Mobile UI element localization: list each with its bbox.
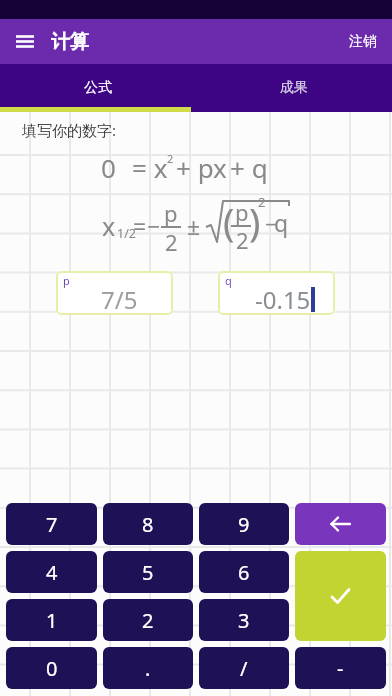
- staticText: 7: [46, 511, 58, 538]
- button[interactable]: 8: [103, 503, 193, 545]
- staticText: x: [102, 209, 116, 243]
- staticText: + q: [230, 150, 268, 185]
- staticText: 9: [238, 511, 250, 538]
- staticText: 公式: [84, 79, 112, 97]
- staticText: -0.15: [255, 283, 311, 315]
- button[interactable]: [16, 35, 34, 48]
- button[interactable]: 0: [6, 647, 97, 689]
- staticText: 成果: [280, 79, 308, 97]
- button[interactable]: 公式: [0, 64, 196, 112]
- button[interactable]: .: [103, 647, 193, 689]
- button[interactable]: 9: [199, 503, 289, 545]
- button[interactable]: 5: [103, 551, 193, 593]
- staticText: 2: [258, 193, 266, 211]
- staticText: 1: [46, 607, 58, 634]
- button[interactable]: 2: [103, 599, 193, 641]
- staticText: (: [223, 195, 235, 247]
- staticText: q: [225, 273, 232, 288]
- staticText: p: [63, 273, 70, 288]
- staticText: 8: [142, 511, 154, 538]
- staticText: 5: [142, 559, 154, 586]
- staticText: −: [147, 210, 161, 241]
- staticText: 0: [46, 655, 58, 682]
- staticText: 3: [238, 607, 250, 634]
- button[interactable]: 6: [199, 551, 289, 593]
- button[interactable]: 注销: [334, 19, 392, 64]
- button[interactable]: q: [218, 271, 335, 315]
- staticText: 2: [142, 607, 154, 634]
- button[interactable]: p: [56, 271, 173, 315]
- button[interactable]: 成果: [196, 64, 392, 112]
- staticText: 计算: [51, 30, 89, 54]
- staticText: = x: [132, 150, 168, 185]
- staticText: ): [249, 195, 261, 247]
- staticText: 注销: [349, 33, 377, 51]
- button[interactable]: -: [295, 647, 386, 689]
- button[interactable]: 7: [6, 503, 97, 545]
- staticText: 2: [165, 227, 178, 257]
- staticText: 7/5: [101, 283, 138, 315]
- staticText: =: [133, 210, 147, 241]
- staticText: ±: [187, 210, 201, 241]
- button[interactable]: /: [199, 647, 289, 689]
- staticText: p: [235, 197, 249, 227]
- staticText: p: [164, 198, 178, 228]
- staticText: −: [265, 210, 278, 239]
- staticText: + px: [176, 150, 227, 185]
- staticText: .: [145, 655, 151, 682]
- staticText: 1/2: [117, 225, 136, 242]
- button[interactable]: 4: [6, 551, 97, 593]
- staticText: 填写你的数字:: [22, 120, 117, 140]
- staticText: 2: [167, 151, 174, 166]
- staticText: /: [240, 655, 248, 682]
- staticText: 6: [238, 559, 250, 586]
- staticText: q: [274, 207, 289, 238]
- button[interactable]: [295, 551, 386, 641]
- staticText: 4: [46, 559, 58, 586]
- button[interactable]: 1: [6, 599, 97, 641]
- staticText: 0: [101, 150, 116, 185]
- button[interactable]: 3: [199, 599, 289, 641]
- staticText: 2: [236, 225, 249, 255]
- button[interactable]: [295, 503, 386, 545]
- staticText: -: [337, 655, 344, 682]
